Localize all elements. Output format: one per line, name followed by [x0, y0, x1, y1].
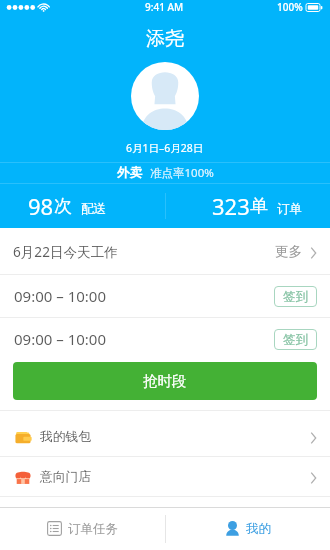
staticText: 09:00 – 10:00: [14, 286, 106, 306]
staticText: 订单任务: [68, 521, 118, 537]
button[interactable]: 抢时段: [13, 362, 317, 400]
button[interactable]: 我的: [165, 507, 330, 550]
staticText: 签到: [283, 332, 308, 348]
button[interactable]: 09:00 – 10:00: [0, 318, 330, 360]
button[interactable]: 09:00 – 10:00: [0, 275, 330, 317]
staticText: 6月22日今天工作: [13, 242, 118, 261]
button[interactable]: 意向门店: [0, 457, 330, 496]
staticText: 抢时段: [143, 372, 187, 390]
staticText: 我的: [246, 521, 271, 537]
staticText: 09:00 – 10:00: [14, 329, 106, 349]
staticText: 6月1日–6月28日: [126, 141, 204, 155]
staticText: 单: [250, 195, 268, 218]
button[interactable]: 订单任务: [0, 507, 165, 550]
staticText: 外卖: [117, 165, 142, 181]
staticText: 订单: [277, 201, 302, 217]
staticText: 98: [28, 191, 54, 221]
staticText: 次: [54, 195, 72, 218]
button[interactable]: 签到: [274, 329, 317, 350]
staticText: 9:41 AM: [145, 0, 184, 14]
staticText: 我的钱包: [40, 429, 92, 445]
staticText: 添尧: [146, 27, 184, 51]
staticText: 准点率100%: [150, 165, 214, 181]
button[interactable]: 6月22日今天工作: [0, 228, 330, 274]
staticText: 323: [212, 191, 250, 221]
staticText: 更多: [275, 243, 303, 260]
staticText: 配送: [81, 201, 106, 217]
staticText: 100%: [277, 0, 303, 14]
button[interactable]: 我的钱包: [0, 417, 330, 456]
staticText: 意向门店: [40, 469, 92, 485]
staticText: 签到: [283, 289, 308, 305]
button[interactable]: 签到: [274, 286, 317, 307]
